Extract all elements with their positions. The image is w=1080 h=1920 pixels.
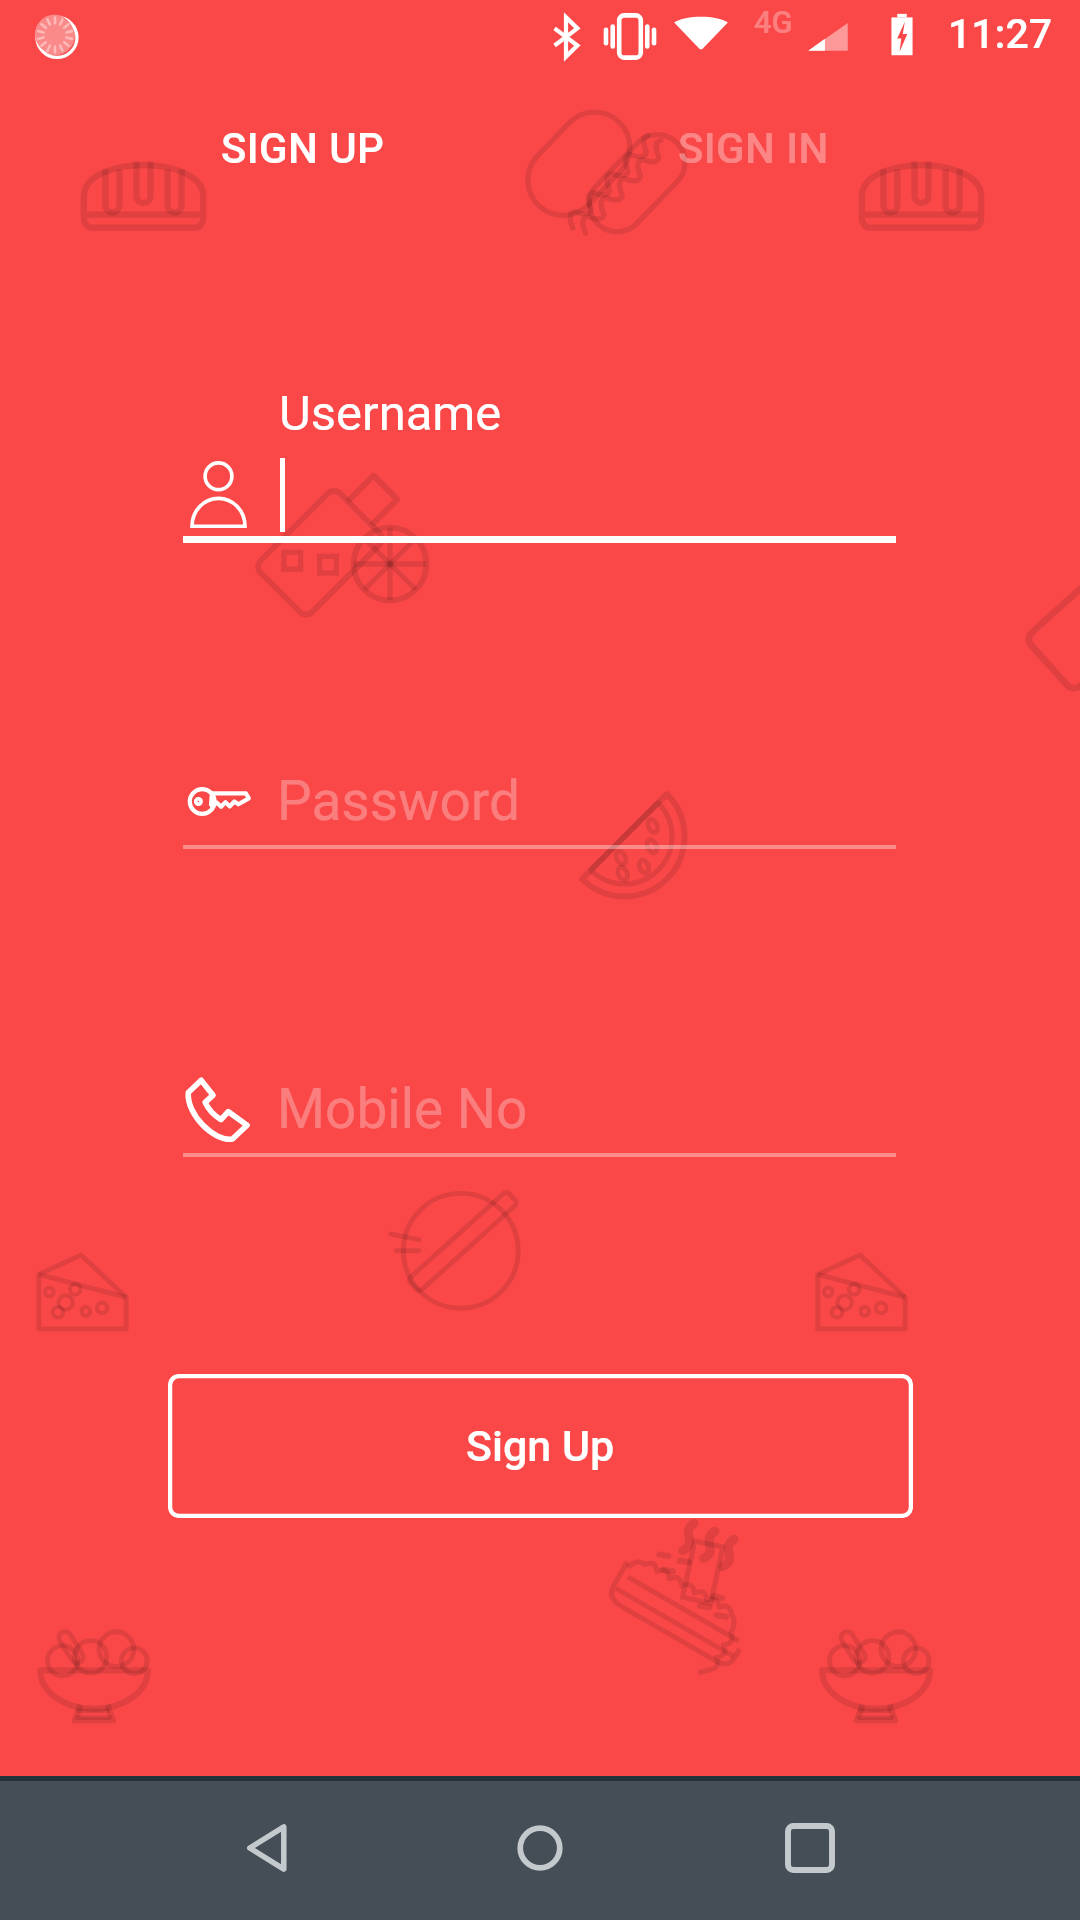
staticText: 4G [754,4,793,40]
staticText: SIGN IN [678,124,829,173]
staticText: Password [277,769,520,833]
staticText: Mobile No [277,1077,528,1141]
staticText: 11:27 [948,10,1053,58]
button[interactable]: Back [180,1788,360,1908]
button[interactable]: Sign Up [168,1374,913,1518]
button[interactable]: SIGN UP [78,106,528,190]
staticText: Sign Up [466,1421,615,1471]
button[interactable]: Recents [720,1788,900,1908]
staticText: SIGN UP [221,124,385,173]
staticText: Username [279,385,502,442]
button[interactable]: Home [450,1788,630,1908]
button[interactable]: SIGN IN [528,106,978,190]
